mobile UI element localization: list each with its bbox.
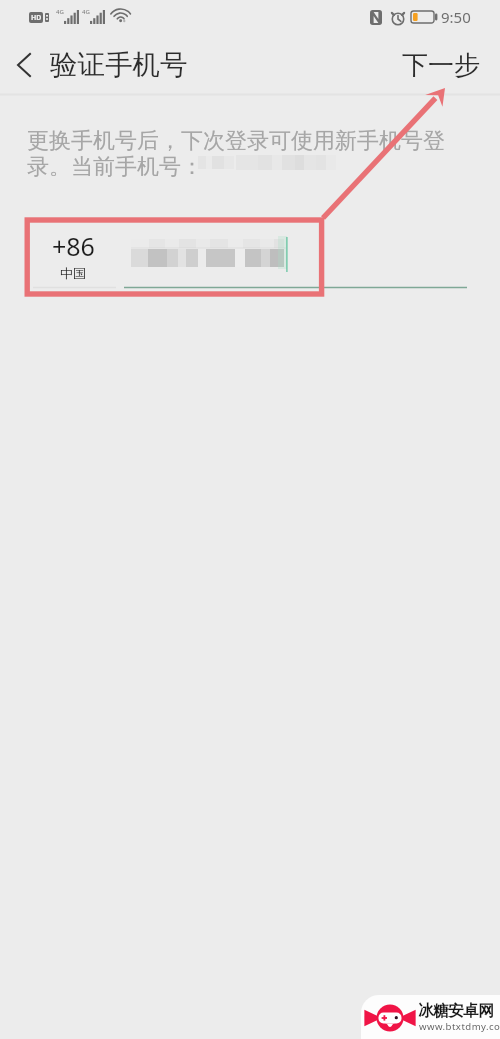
staticText: 中国 [60,265,86,281]
button[interactable]: 手机号输入框 [125,232,293,284]
staticText: www.btxtdmy.com [419,1020,500,1033]
staticText: 9:50 [441,7,471,27]
button[interactable]: +86 [34,229,112,281]
staticText: 验证手机号 [50,48,188,83]
button[interactable]: 下一步 [386,39,496,92]
staticText: 下一步 [402,49,480,82]
staticText: +86 [52,229,95,263]
button[interactable]: 返回 [1,42,47,88]
staticText: 4G [56,8,64,16]
staticText: 更换手机号后，下次登录可使用新手机号登 录。当前手机号： [27,127,445,181]
staticText: HD [31,13,42,23]
staticText: 冰糖安卓网 [418,1001,494,1021]
staticText: 4G [82,8,90,16]
